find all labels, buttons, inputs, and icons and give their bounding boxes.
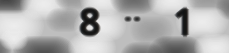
staticText: 1 — [173, 0, 194, 46]
staticText: 8 — [79, 0, 100, 44]
staticText: 1 — [173, 0, 194, 44]
staticText: 8 — [79, 0, 100, 45]
staticText: 8 — [79, 0, 100, 43]
staticText: 8 — [79, 0, 100, 47]
staticText: 8 — [80, 0, 101, 46]
staticText: 1 — [175, 0, 196, 45]
staticText: 8 — [80, 0, 101, 44]
staticText: 1 — [173, 0, 194, 44]
staticText: 8 — [78, 0, 99, 45]
staticText: 8 — [77, 0, 98, 45]
staticText: 8 — [82, 0, 103, 45]
staticText: 1 — [173, 0, 194, 47]
staticText: 8 — [81, 0, 102, 45]
staticText: 1 — [171, 0, 192, 45]
staticText: 1 — [173, 0, 194, 43]
staticText: 8 — [79, 0, 100, 44]
staticText: 1 — [176, 0, 197, 45]
staticText: 1 — [174, 0, 195, 46]
staticText: 1 — [174, 0, 195, 44]
staticText: 1 — [172, 0, 193, 45]
staticText: 8 — [79, 0, 100, 46]
staticText: 1 — [173, 0, 194, 45]
staticText: 1 — [173, 0, 194, 46]
staticText: 8 — [79, 0, 100, 46]
